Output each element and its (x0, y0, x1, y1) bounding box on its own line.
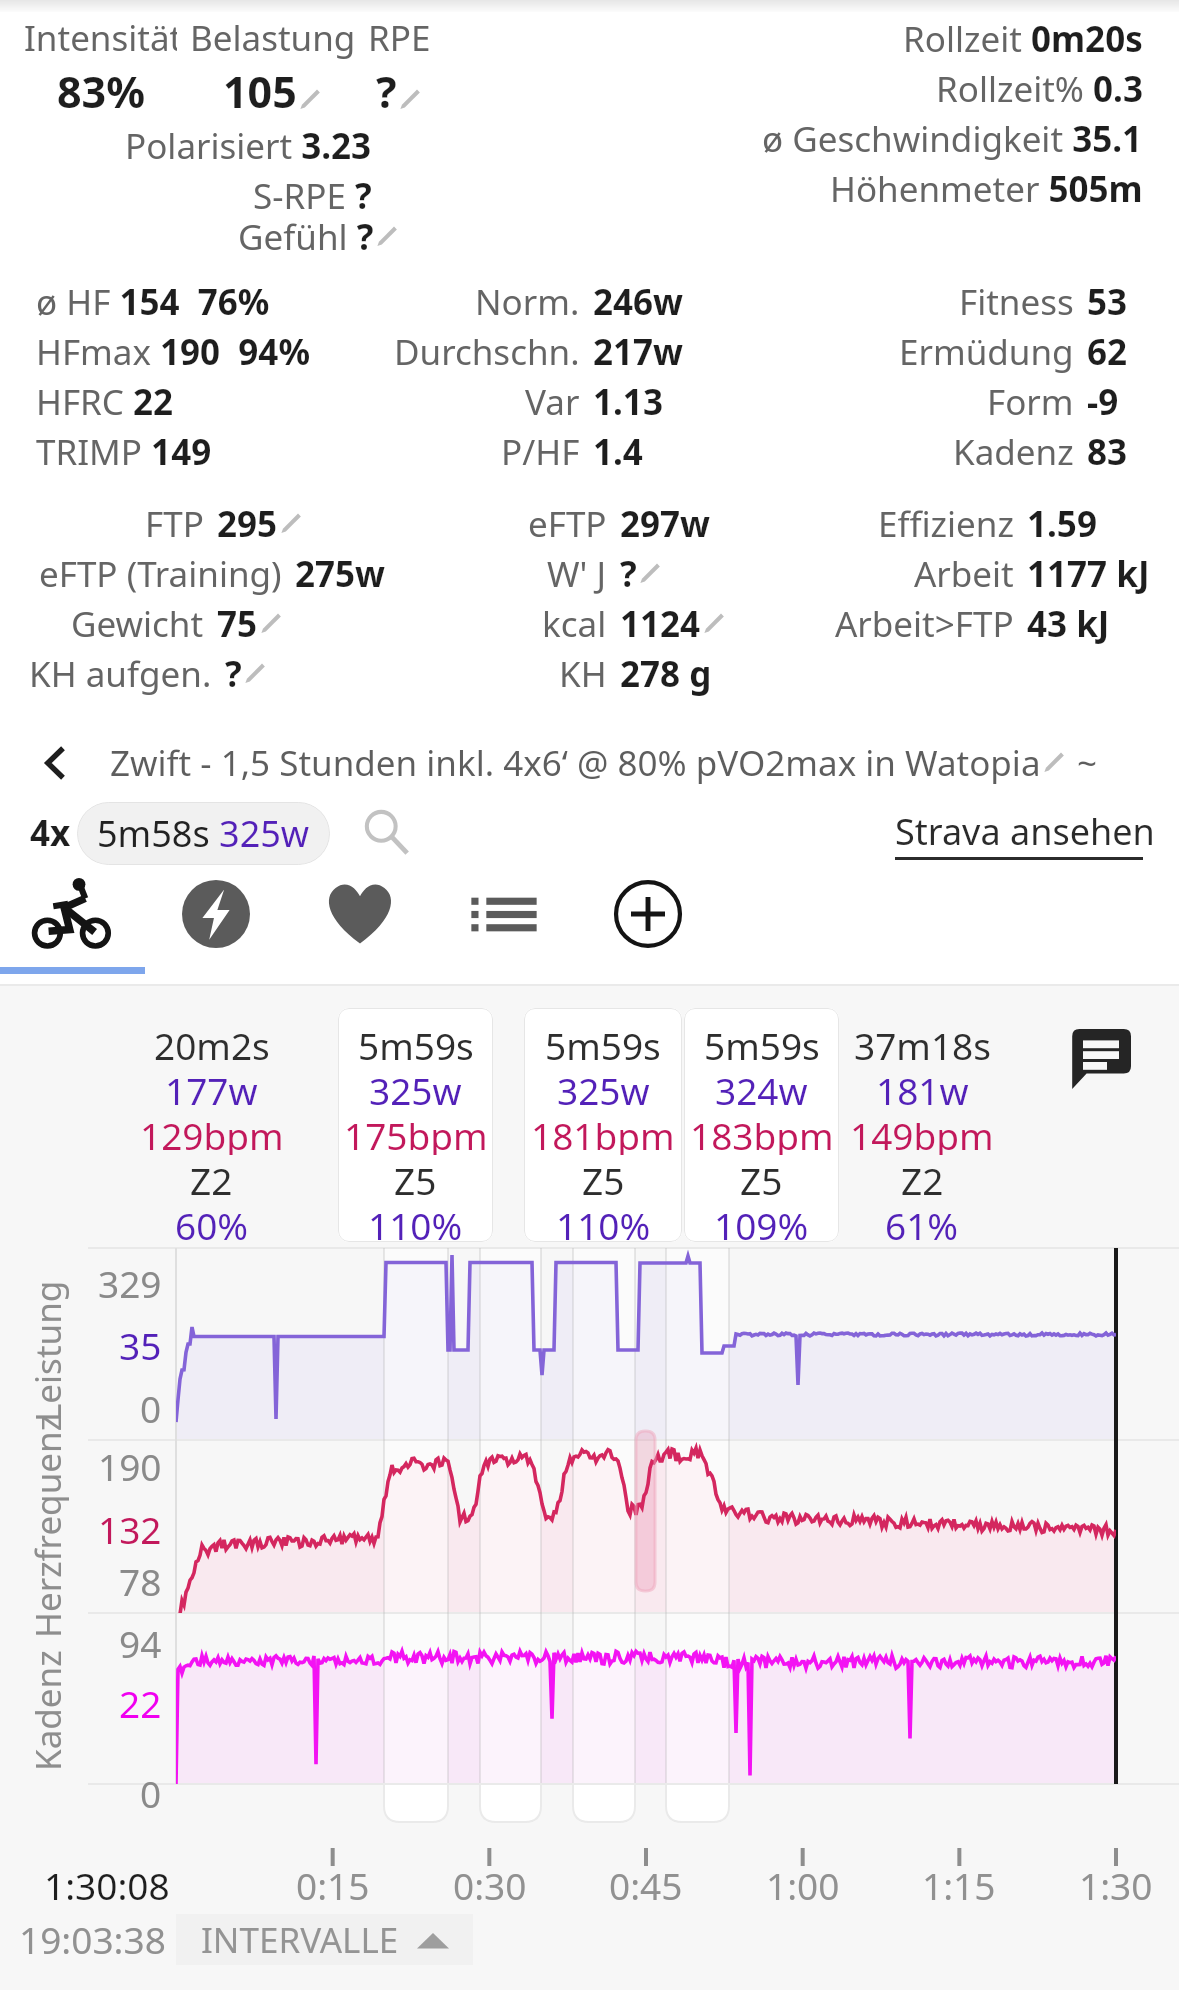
button[interactable]: Cycling (0, 870, 144, 958)
staticText: 1.13 (593, 378, 663, 426)
staticText: 325w (369, 1065, 462, 1110)
staticText: ? (376, 62, 397, 121)
staticText: 1.59 (1027, 500, 1097, 548)
staticText: 190 (98, 1441, 162, 1491)
other: Edit (258, 611, 284, 637)
staticText: W' J (547, 550, 607, 598)
staticText: Z5 (582, 1155, 625, 1200)
staticText: 149bpm (850, 1110, 994, 1155)
other: Edit (242, 661, 268, 687)
other: Edit (278, 511, 304, 537)
staticText: 20m2s (154, 1020, 270, 1065)
staticText: Fitness (959, 278, 1074, 326)
staticText: Polarisiert 3.23 (125, 122, 372, 170)
staticText: TRIMP 149 (36, 428, 212, 476)
other: Edit (397, 87, 423, 113)
staticText: ? (620, 550, 637, 598)
staticText: INTERVALLE (201, 1916, 399, 1964)
staticText: Rollzeit% 0.3 (936, 65, 1143, 113)
staticText: 0 (140, 1383, 162, 1433)
button[interactable]: 5m59s (684, 1008, 839, 1242)
staticText: Herzfrequenz (24, 1414, 72, 1638)
staticText: FTP (145, 500, 204, 548)
staticText: 0:45 (609, 1860, 683, 1910)
staticText: 61% (885, 1200, 959, 1242)
other: Edit (297, 87, 323, 113)
staticText: KH (559, 650, 607, 698)
staticText: 78 (119, 1556, 162, 1606)
staticText: KH aufgen. (29, 650, 212, 698)
staticText: Gefühl ? (238, 213, 374, 261)
staticText: 275w (295, 550, 386, 598)
staticText: Kadenz (24, 1650, 72, 1771)
staticText: Höhenmeter 505m (830, 165, 1143, 213)
staticText: 1177 kJ (1027, 550, 1150, 598)
staticText: 297w (620, 500, 711, 548)
staticText: 5m58s 325w (97, 809, 310, 858)
staticText: 4x (30, 809, 71, 857)
staticText: Gewicht (71, 600, 204, 648)
button[interactable]: INTERVALLE (176, 1914, 473, 1965)
staticText: Ermüdung (899, 328, 1074, 376)
staticText: Form (987, 378, 1074, 426)
staticText: 0:30 (453, 1860, 527, 1910)
other: Edit (701, 611, 727, 637)
staticText: Norm. (475, 278, 580, 326)
button[interactable]: Search (356, 802, 418, 864)
staticText: 53 (1087, 278, 1128, 326)
button[interactable]: Intervals (432, 870, 576, 958)
staticText: 19:03:38 (19, 1914, 166, 1964)
staticText: 175bpm (344, 1110, 488, 1155)
staticText: Arbeit (914, 550, 1014, 598)
staticText: HFRC 22 (36, 378, 174, 426)
staticText: Belastung (190, 14, 356, 62)
staticText: 129bpm (140, 1110, 284, 1155)
staticText: 5m59s (358, 1020, 474, 1065)
staticText: 60% (175, 1200, 249, 1242)
staticText: 1:15 (922, 1860, 996, 1910)
staticText: Z2 (901, 1155, 944, 1200)
staticText: 181w (876, 1065, 969, 1110)
staticText: 325w (557, 1065, 650, 1110)
staticText: 1:30:08 (44, 1860, 170, 1910)
button[interactable]: Heart rate (288, 870, 432, 958)
staticText: 1.4 (593, 428, 643, 476)
staticText: 329 (98, 1258, 162, 1308)
staticText: 75 (217, 600, 258, 648)
staticText: 181bpm (531, 1110, 675, 1155)
staticText: Z5 (740, 1155, 783, 1200)
staticText: Effizienz (878, 500, 1014, 548)
staticText: 183bpm (690, 1110, 834, 1155)
button[interactable]: 5m59s (338, 1008, 493, 1242)
staticText: ? (225, 650, 242, 698)
staticText: 110% (368, 1200, 463, 1242)
staticText: 110% (556, 1200, 651, 1242)
staticText: 35 (119, 1320, 162, 1370)
staticText: Zwift - 1,5 Stunden inkl. 4x6‘ @ 80% pVO… (110, 739, 1041, 787)
button[interactable]: Power (144, 870, 288, 958)
button[interactable]: Strava ansehen (895, 807, 1155, 860)
staticText: 295 (217, 500, 278, 548)
staticText: Z2 (190, 1155, 233, 1200)
button[interactable]: 5m59s (524, 1008, 682, 1242)
staticText: 37m18s (854, 1020, 991, 1065)
staticText: Arbeit>FTP (835, 600, 1014, 648)
staticText: ø HF 154 76% (36, 278, 270, 326)
other: Edit (1041, 750, 1067, 776)
staticText: 1:30 (1079, 1860, 1153, 1910)
staticText: P/HF (501, 428, 580, 476)
staticText: Durchschn. (394, 328, 580, 376)
button[interactable]: Add (576, 870, 720, 958)
staticText: 217w (593, 328, 684, 376)
staticText: Z5 (394, 1155, 437, 1200)
staticText: 324w (715, 1065, 808, 1110)
button[interactable]: 5m58s 325w (77, 802, 330, 865)
other: Edit (374, 224, 400, 250)
staticText: Kadenz (953, 428, 1074, 476)
button[interactable]: Back (0, 729, 110, 796)
button[interactable]: Comments (1055, 1021, 1147, 1097)
staticText: 5m59s (704, 1020, 820, 1065)
staticText: Intensität (24, 14, 177, 62)
staticText: 83 (1087, 428, 1128, 476)
staticText: 43 kJ (1027, 600, 1110, 648)
